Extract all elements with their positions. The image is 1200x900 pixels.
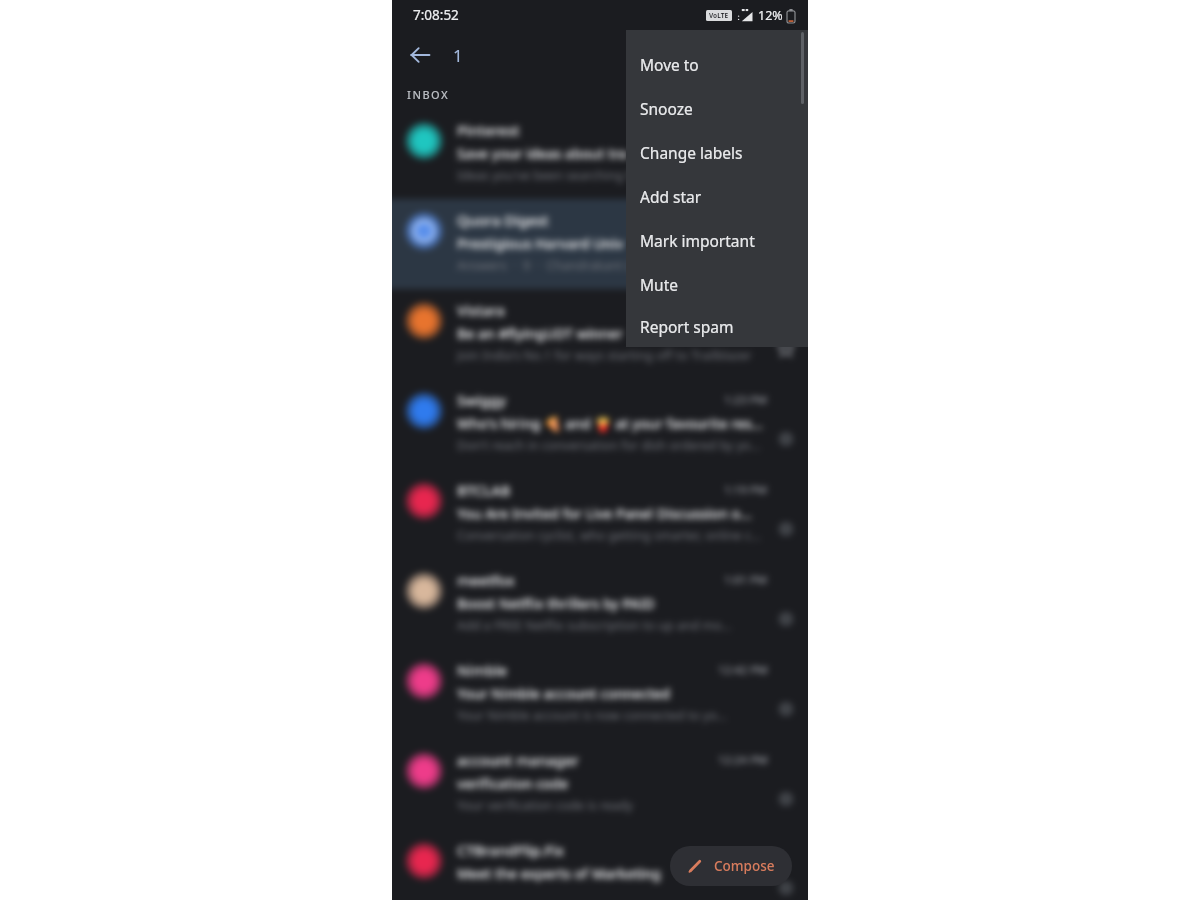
button[interactable]: CTBrandFlip.Fix [392,829,808,900]
staticText: verification code [457,774,569,793]
staticText: Your verification code is ready [457,797,633,814]
staticText: Boost Netflix thrillers by PAID [457,594,655,613]
staticText: 1:23 PM [724,392,768,408]
button[interactable]: Star [773,336,799,362]
button[interactable]: Attachment [773,426,799,452]
staticText: Answers · 9 · Chandrakant Li [457,257,636,274]
staticText: Vistara [457,300,505,320]
button[interactable]: Nimble [392,649,808,739]
staticText: Don't reach in conversation for dish ord… [457,437,768,454]
staticText: Snooze [640,98,693,119]
staticText: Swiggy [457,390,507,410]
staticText: Who's hiring 🍕 and 🍟 at your favourite r… [457,414,763,433]
button[interactable]: Quora Digest [392,199,808,289]
button[interactable]: Compose [670,846,792,886]
button[interactable]: Attachment [773,876,799,900]
staticText: Save your ideas about tra [457,144,628,163]
staticText: Join India's No.1 for ways starting off … [457,347,752,364]
staticText: account manager [457,750,579,770]
staticText: 12:42 PM [718,662,768,678]
button[interactable]: Add star [626,174,808,218]
button[interactable]: Report spam [626,306,808,347]
button[interactable]: meetfox [392,559,808,649]
staticText: 1 [453,44,463,67]
staticText: Be an #flyingUDT winner [457,324,623,343]
staticText: Meet the experts of Marketing [457,864,661,883]
button[interactable]: Attachment [773,516,799,542]
button[interactable]: Pinterest [392,109,808,199]
staticText: Ideas you've been searching for [457,167,644,184]
staticText: Quora Digest [457,210,549,230]
button[interactable]: Attachment [773,606,799,632]
button[interactable]: Swiggy [392,379,808,469]
staticText: 12:24 PM [718,752,768,768]
staticText: Your Nimble account is now connected to … [457,707,727,724]
staticText: 12% [758,7,783,24]
staticText: Report spam [640,316,734,337]
button[interactable]: BTCLAB [392,469,808,559]
button[interactable]: Snooze [626,86,808,130]
button[interactable]: Back [399,34,441,76]
staticText: 1:01 PM [724,572,768,588]
button[interactable]: Move to [626,42,808,86]
button[interactable]: Mute [626,262,808,306]
button[interactable]: Vistara [392,289,808,379]
staticText: You Are Invited for Live Panel Discussio… [457,504,752,523]
staticText: BTCLAB [457,480,511,500]
button[interactable]: Attachment [773,696,799,722]
staticText: CTBrandFlip.Fix [457,840,564,860]
staticText: INBOX [407,87,450,102]
staticText: Move to [640,54,699,75]
button[interactable]: Mark important [626,218,808,262]
staticText: Mark important [640,230,755,251]
staticText: Your Nimble account connected [457,684,671,703]
staticText: Change labels [640,142,743,163]
staticText: Mute [640,274,678,295]
staticText: Add star [640,186,702,207]
button[interactable]: account manager [392,739,808,829]
staticText: Prestigious Harvard Univ [457,234,624,253]
staticText: Compose [714,857,775,875]
staticText: Add a FREE Netflix subscription to up an… [457,617,732,634]
staticText: VoLTE [709,11,729,20]
staticText: Pinterest [457,120,520,140]
staticText: Nimble [457,660,508,680]
staticText: meetfox [457,570,515,590]
staticText: 7:08:52 [413,6,459,24]
button[interactable]: Attachment [773,786,799,812]
staticText: 1:19 PM [724,482,768,498]
staticText: Conversation cyclist, who getting smarte… [457,527,761,544]
button[interactable]: Change labels [626,130,808,174]
